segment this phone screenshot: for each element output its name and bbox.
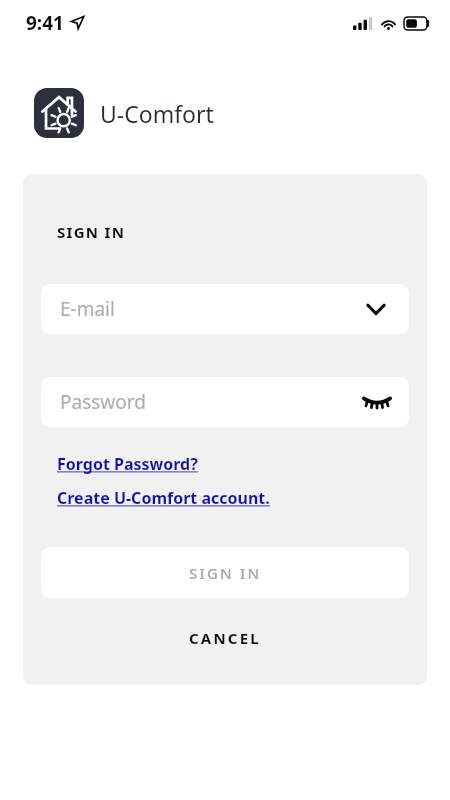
staticText: U-Comfort [100,98,214,129]
staticText: Forgot Password? [57,453,198,475]
staticText: SIGN IN [189,563,262,583]
button[interactable]: Create U-Comfort account. [57,487,270,509]
staticText: 9:41 [26,10,64,36]
button[interactable]: Show password [359,384,395,420]
staticText: E-mail [60,296,115,322]
button[interactable]: Show email suggestions [359,292,393,326]
button[interactable]: SIGN IN [41,547,409,598]
button[interactable]: E-mail [41,284,409,334]
staticText: Password [60,389,146,415]
button[interactable]: Forgot Password? [57,453,198,475]
staticText: CANCEL [189,628,261,648]
button[interactable]: Password [41,377,409,427]
staticText: Create U-Comfort account. [57,487,270,509]
staticText: SIGN IN [57,222,126,242]
button[interactable]: CANCEL [23,613,427,663]
